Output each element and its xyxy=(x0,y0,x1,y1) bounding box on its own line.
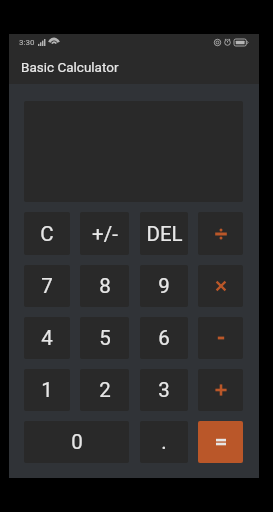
button[interactable]: 6 xyxy=(140,317,188,359)
button[interactable]: Multiply xyxy=(198,265,243,307)
button[interactable]: Divide xyxy=(198,212,243,255)
button[interactable]: 5 xyxy=(80,317,129,359)
staticText: 4 xyxy=(41,326,53,350)
button[interactable]: 3 xyxy=(140,369,188,411)
button[interactable]: 0 xyxy=(24,421,129,463)
staticText: . xyxy=(161,430,167,454)
button[interactable]: 4 xyxy=(24,317,70,359)
button[interactable]: 9 xyxy=(140,265,188,307)
button[interactable]: 2 xyxy=(80,369,129,411)
button[interactable]: Subtract xyxy=(198,317,243,359)
staticText: 0 xyxy=(71,430,83,454)
staticText: 6 xyxy=(158,326,170,350)
staticText: 2 xyxy=(99,378,111,402)
staticText: 5 xyxy=(99,326,111,350)
staticText: 1 xyxy=(41,378,53,402)
staticText: 3 xyxy=(158,378,170,402)
button[interactable]: 1 xyxy=(24,369,70,411)
button[interactable]: 8 xyxy=(80,265,129,307)
staticText: 7 xyxy=(41,274,53,298)
button[interactable]: DEL xyxy=(140,212,188,255)
button[interactable]: Add xyxy=(198,369,243,411)
button[interactable]: C xyxy=(24,212,70,255)
button[interactable]: Equals xyxy=(198,421,243,463)
button[interactable]: . xyxy=(140,421,188,463)
staticText: Basic Calculator xyxy=(21,59,119,75)
staticText: 8 xyxy=(99,274,111,298)
button[interactable]: 7 xyxy=(24,265,70,307)
staticText: DEL xyxy=(146,222,183,246)
staticText: C xyxy=(40,222,54,246)
staticText: 9 xyxy=(158,274,170,298)
staticText: 3:30 xyxy=(19,38,35,47)
button[interactable]: +/- xyxy=(80,212,129,255)
staticText: +/- xyxy=(92,222,118,246)
